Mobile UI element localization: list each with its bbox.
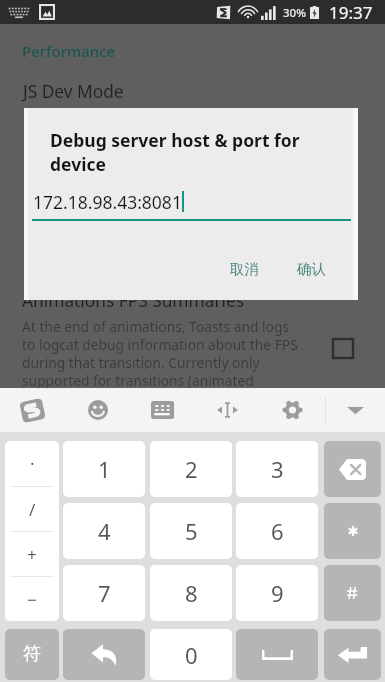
button[interactable]: Emoji [65, 388, 130, 432]
staticText: 5 [185, 516, 198, 546]
button[interactable]: 取消 [221, 253, 268, 285]
button[interactable]: 1 [63, 441, 145, 497]
staticText: JS Dev Mode [23, 80, 124, 104]
staticText: Performance [22, 41, 116, 61]
staticText: 0 [185, 640, 198, 670]
button[interactable]: 5 [150, 503, 232, 559]
staticText: Animations FPS Summaries [22, 289, 245, 313]
button[interactable]: · [5, 441, 59, 486]
button[interactable]: 6 [236, 503, 318, 559]
staticText: 6 [271, 516, 284, 546]
button[interactable]: 9 [236, 565, 318, 621]
staticText: 8 [185, 578, 198, 608]
button[interactable]: Space [236, 629, 318, 680]
staticText: 3 [271, 454, 284, 484]
staticText: + [27, 543, 37, 566]
staticText: 172.18.98.43:8081 [33, 190, 182, 214]
staticText: 30% [283, 5, 306, 21]
button[interactable]: 3 [236, 441, 318, 497]
staticText: 4 [98, 516, 111, 546]
staticText: 7 [98, 578, 111, 608]
button[interactable]: 7 [63, 565, 145, 621]
staticText: 确认 [297, 260, 326, 278]
staticText: / [29, 498, 36, 521]
button[interactable]: Return [63, 629, 145, 680]
button[interactable]: + [5, 532, 59, 576]
staticText: At the end of animations, Toasts and log… [22, 317, 298, 390]
button[interactable]: 8 [150, 565, 232, 621]
staticText: · [30, 452, 35, 475]
button[interactable]: Input method [0, 388, 65, 432]
staticText: 符 [23, 643, 41, 666]
button[interactable]: / [5, 487, 59, 531]
button[interactable]: Asterisk [324, 503, 381, 559]
button[interactable]: 0 [150, 629, 232, 680]
staticText: 取消 [230, 260, 259, 278]
button[interactable]: − [5, 577, 59, 621]
button[interactable]: 确认 [288, 253, 335, 285]
staticText: Debug server host & port for device [50, 128, 322, 176]
button[interactable]: Hide keyboard [326, 388, 385, 432]
button[interactable]: 2 [150, 441, 232, 497]
button[interactable]: Move cursor [195, 388, 260, 432]
button[interactable]: 4 [63, 503, 145, 559]
button[interactable]: Enter [324, 629, 381, 680]
button[interactable]: Settings [260, 388, 325, 432]
staticText: 9 [271, 578, 284, 608]
staticText: − [27, 588, 37, 611]
staticText: 1 [98, 454, 111, 484]
button[interactable]: Backspace [324, 441, 381, 497]
staticText: 19:37 [329, 1, 373, 24]
staticText: 2 [185, 454, 198, 484]
button[interactable]: 符 [5, 629, 59, 680]
button[interactable]: Keyboard layout [130, 388, 195, 432]
button[interactable]: Hash [324, 565, 381, 621]
